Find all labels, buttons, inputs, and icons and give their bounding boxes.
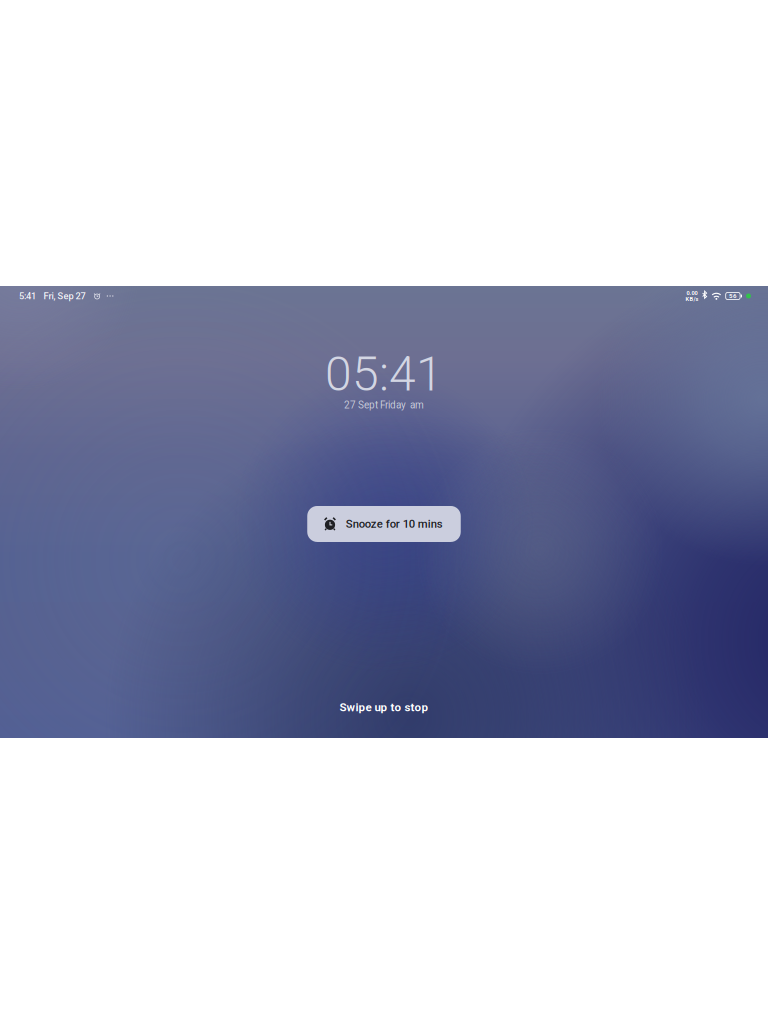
staticText: 5:41 [19,290,36,301]
staticText: Snooze for 10 mins [346,517,443,531]
staticText: Fri, Sep 27 [43,290,85,301]
staticText: 0.00 [687,290,698,296]
staticText: 56 [729,292,737,300]
staticText: 05:41 [325,346,443,402]
staticText: Swipe up to stop [339,700,428,714]
button[interactable]: Snooze for 10 mins [307,506,461,542]
staticText: KB/s [686,296,699,302]
staticText: 27 Sept Friday am [344,399,424,411]
